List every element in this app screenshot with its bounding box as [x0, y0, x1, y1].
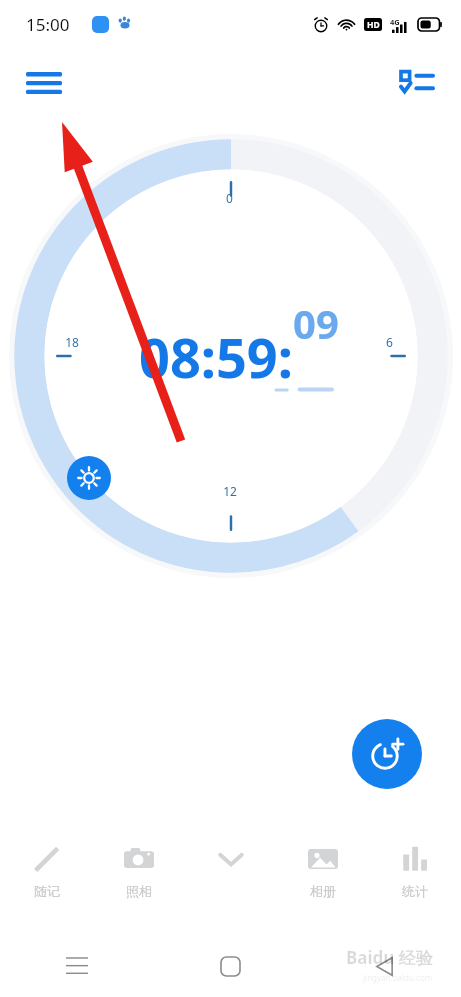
button[interactable]: Menu: [18, 56, 70, 108]
button[interactable]: Brightness: [67, 456, 111, 500]
staticText: jingyan.baidu.com: [363, 972, 433, 983]
staticText: 随记: [34, 883, 60, 899]
staticText: 相册: [310, 883, 336, 899]
staticText: 18: [65, 334, 79, 350]
staticText: 统计: [402, 883, 428, 899]
staticText: 12: [223, 483, 237, 499]
button[interactable]: 统计: [369, 828, 461, 910]
button[interactable]: 照相: [93, 828, 185, 910]
staticText: 08:59:: [139, 320, 293, 394]
button[interactable]: Back: [307, 935, 461, 997]
staticText: 15:00: [26, 13, 70, 36]
staticText: 照相: [126, 883, 152, 899]
button[interactable]: [185, 828, 277, 910]
button[interactable]: Task list: [391, 56, 443, 108]
staticText: 4G: [390, 17, 400, 27]
button[interactable]: Recent apps: [0, 935, 153, 997]
staticText: Baidu 经验: [346, 946, 433, 969]
button[interactable]: 相册: [277, 828, 369, 910]
staticText: HD: [367, 19, 380, 31]
button[interactable]: 随记: [0, 828, 93, 910]
staticText: 0: [226, 190, 233, 206]
button[interactable]: Home: [153, 935, 307, 997]
button[interactable]: Add timer: [352, 719, 422, 789]
staticText: 6: [386, 334, 393, 350]
staticText: 09: [293, 296, 339, 350]
